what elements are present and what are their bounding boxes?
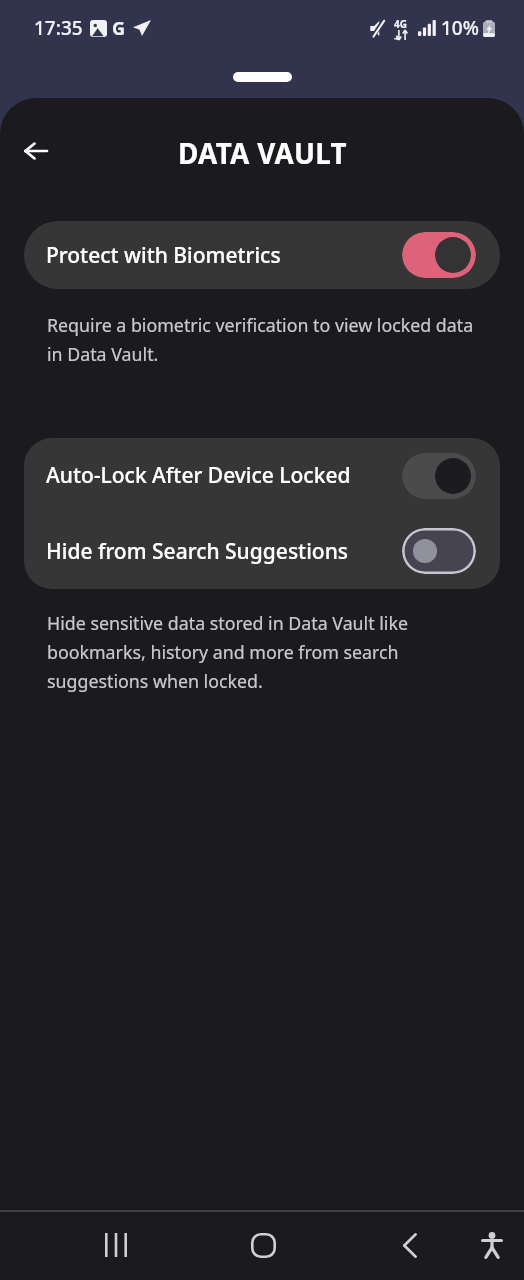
button[interactable]: Home — [236, 1218, 290, 1272]
staticText: Hide from Search Suggestions — [46, 537, 348, 566]
staticText: 17:35 — [34, 15, 83, 41]
button[interactable]: Protect with Biometrics — [24, 221, 500, 289]
button[interactable]: Toggle — [402, 453, 476, 499]
button[interactable]: Hide from Search Suggestions — [24, 513, 500, 589]
staticText: 10% — [441, 15, 479, 41]
staticText: Protect with Biometrics — [46, 241, 281, 270]
button[interactable]: Toggle — [402, 528, 476, 574]
button[interactable]: Back — [383, 1218, 437, 1272]
button[interactable]: Auto-Lock After Device Locked — [24, 438, 500, 513]
button[interactable]: Recent apps — [89, 1218, 143, 1272]
button[interactable]: Accessibility — [465, 1218, 519, 1272]
button[interactable]: Toggle — [402, 232, 476, 278]
button[interactable]: Back — [14, 129, 58, 173]
staticText: Require a biometric verification to view… — [47, 313, 480, 366]
staticText: 4G+ — [394, 17, 410, 40]
staticText: G — [112, 16, 126, 41]
staticText: Hide sensitive data stored in Data Vault… — [47, 611, 452, 693]
staticText: Auto-Lock After Device Locked — [46, 461, 351, 490]
staticText: DATA VAULT — [178, 134, 347, 172]
